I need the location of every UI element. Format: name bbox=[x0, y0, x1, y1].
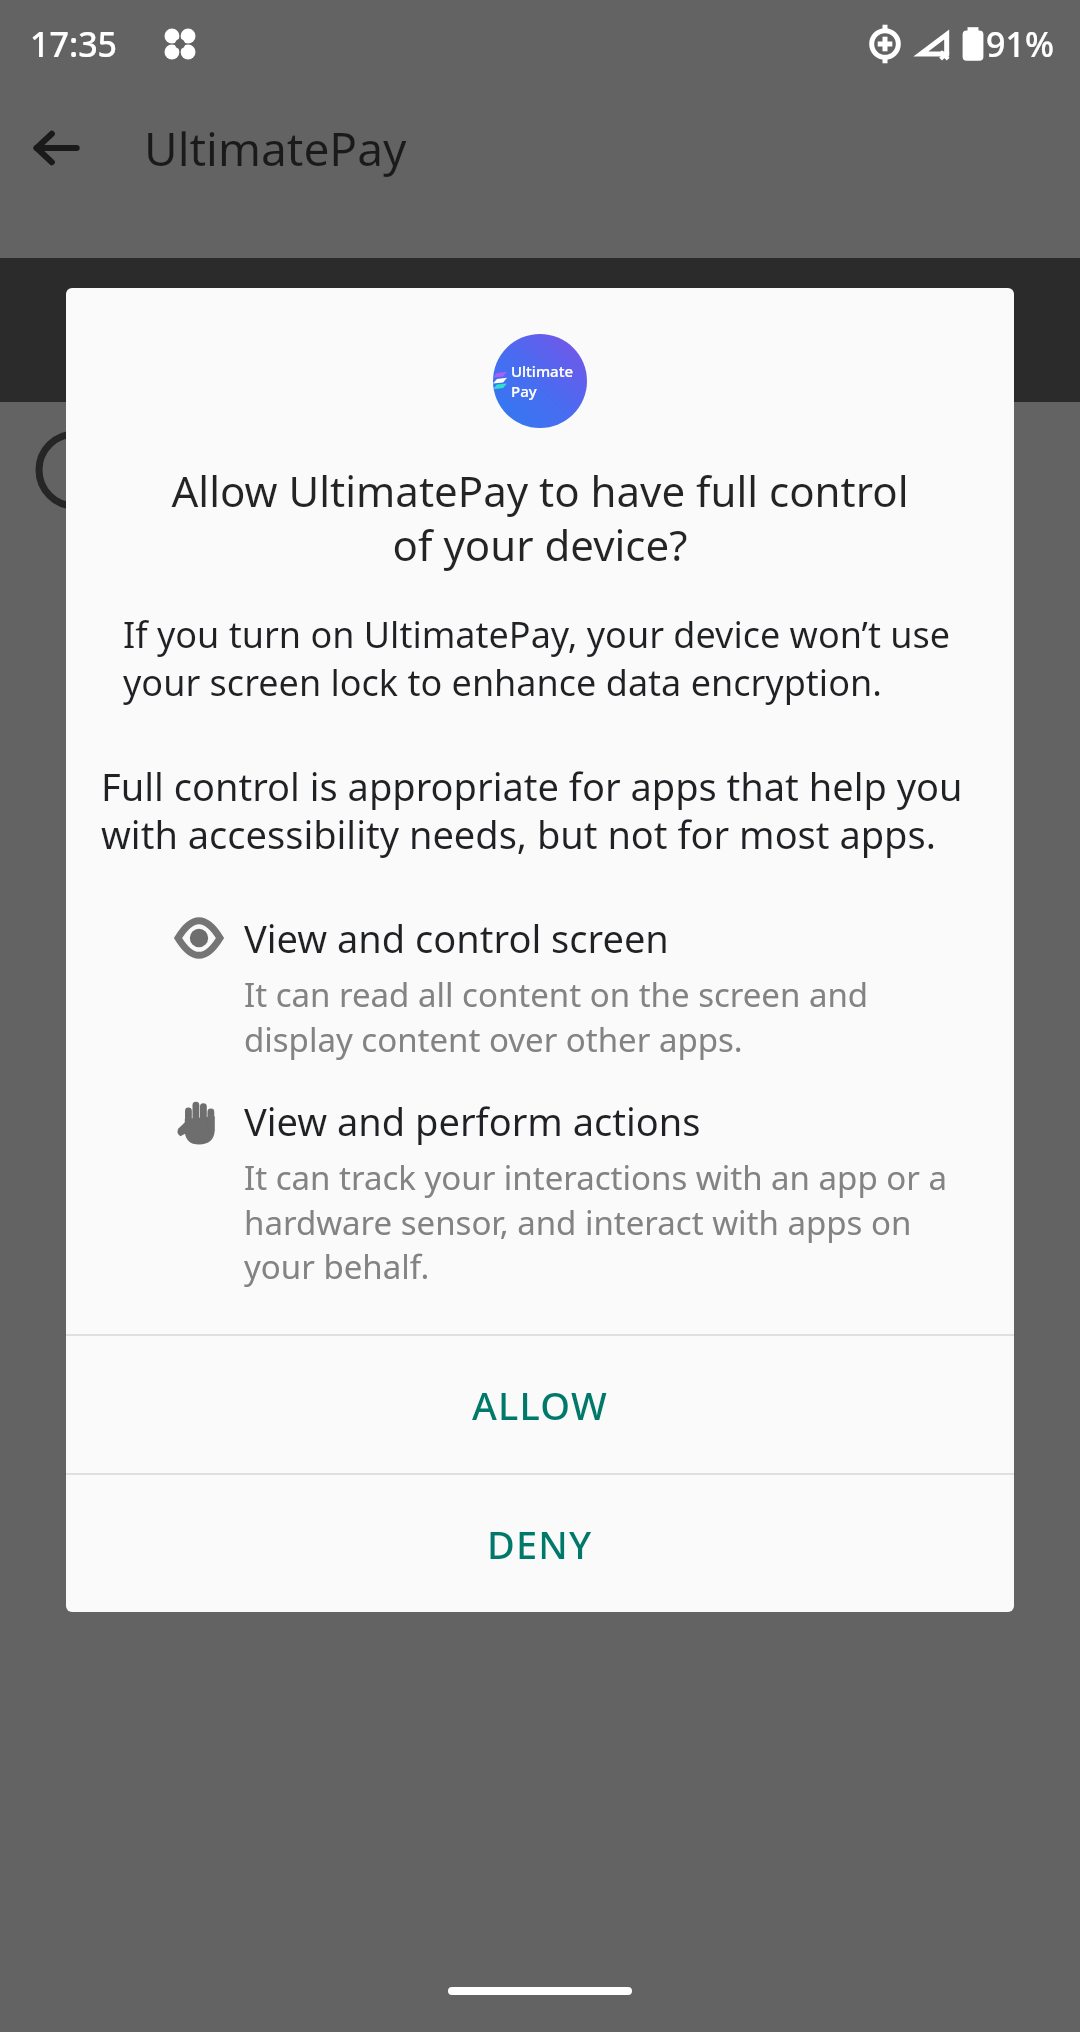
staticText: 17:35 bbox=[30, 21, 118, 67]
staticText: It can read all content on the screen an… bbox=[244, 972, 978, 1061]
staticText: DENY bbox=[487, 1518, 593, 1570]
staticText: 91% bbox=[986, 21, 1054, 67]
staticText: View and perform actions bbox=[244, 1095, 701, 1147]
button[interactable]: ALLOW bbox=[66, 1336, 1014, 1473]
staticText: ALLOW bbox=[472, 1379, 608, 1431]
staticText: If you turn on UltimatePay, your device … bbox=[123, 610, 960, 706]
staticText: View and control screen bbox=[244, 912, 669, 964]
staticText: It can track your interactions with an a… bbox=[244, 1155, 978, 1288]
button[interactable]: Back bbox=[18, 110, 94, 186]
button[interactable]: DENY bbox=[66, 1475, 1014, 1612]
staticText: Full control is appropriate for apps tha… bbox=[101, 760, 984, 860]
staticText: Ultimate Pay bbox=[511, 361, 587, 401]
staticText: Allow UltimatePay to have full control o… bbox=[162, 462, 918, 574]
staticText: UltimatePay bbox=[144, 117, 407, 180]
